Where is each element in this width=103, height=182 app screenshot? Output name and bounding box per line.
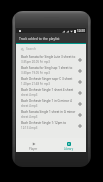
staticText: Bach Orchestr Single 1 sheet 4 sheet	[21, 88, 74, 92]
staticText: Track added to the playlist	[19, 36, 60, 40]
button[interactable]: Add to playlist	[76, 56, 83, 63]
staticText: 3:30pm 19.05 Fri mp3	[21, 71, 50, 75]
staticText: 3:35pm 20.05 Fri mp3	[21, 60, 50, 64]
staticText: 12:13 4 mp3	[21, 126, 38, 130]
staticText: Search	[26, 47, 37, 51]
staticText: Bach Sonata for Single Lute 3 sheet to	[21, 55, 76, 59]
staticText: 1:20pm 21:48 Fri mp3	[21, 82, 50, 86]
staticText: Bach Orchestr Single 1:12pm to 3:22pm	[21, 121, 76, 125]
button[interactable]: Add to playlist	[76, 100, 83, 107]
staticText: sheet 4 mp3	[21, 115, 38, 119]
button[interactable]: Bach Orchestr Single 1:12pm to 3:22pm	[16, 120, 86, 131]
staticText: Bach Orchestr Single 1 in G minor 4	[21, 99, 72, 103]
button[interactable]: Add to playlist	[76, 122, 83, 129]
button[interactable]: Add to playlist	[76, 78, 83, 85]
staticText: Bach Sonata Single 1 sheet in G minor	[21, 110, 76, 114]
button[interactable]: Bach Orchestr Single 1 in G minor 4	[16, 98, 86, 109]
button[interactable]: Add to playlist	[76, 89, 83, 96]
button[interactable]: Add to playlist	[76, 67, 83, 74]
staticText: Bach Sonata for Singl sop 1 sheet to	[21, 66, 73, 70]
button[interactable]: Add to playlist	[76, 111, 83, 118]
button[interactable]: Player	[16, 139, 51, 151]
button[interactable]: Bach Sonata for Singl sop 1 sheet to	[16, 65, 86, 76]
button[interactable]: Bach Orchestr Single 1 sheet 4 sheet	[16, 87, 86, 98]
staticText: sheet 4 mp3	[21, 104, 38, 108]
staticText: Library	[64, 147, 74, 151]
button[interactable]: Bach Orchestr Singer sopr C 3 sheet	[16, 76, 86, 87]
staticText: Player	[29, 147, 38, 151]
staticText: 12:30	[77, 29, 85, 33]
button[interactable]: Library	[51, 139, 86, 151]
staticText: Bach Orchestr Singer sopr C 3 sheet	[21, 77, 73, 81]
button[interactable]: Bach Sonata for Single Lute 3 sheet to	[16, 54, 86, 65]
staticText: sheet 4 mp3	[21, 93, 38, 97]
button[interactable]: Bach Sonata Single 1 sheet in G minor	[16, 109, 86, 120]
button[interactable]: Search	[16, 44, 86, 54]
